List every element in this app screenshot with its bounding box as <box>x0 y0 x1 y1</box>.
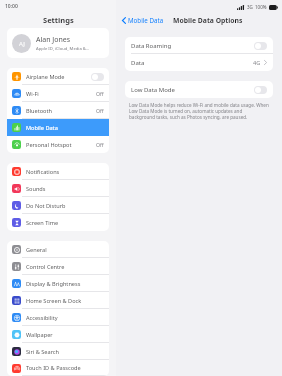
staticText: Data Roaming <box>131 42 172 50</box>
staticText: Accessibility <box>26 314 58 322</box>
button[interactable]: Data <box>125 54 273 71</box>
button[interactable]: Screen Time <box>7 214 109 231</box>
button[interactable]: Wallpaper <box>7 326 109 343</box>
staticText: Wi-Fi <box>26 90 39 98</box>
button[interactable]: General <box>7 241 109 258</box>
button[interactable]: Low Data Mode <box>125 81 273 98</box>
button[interactable]: Airplane Mode <box>7 68 109 85</box>
button[interactable]: Toggle <box>91 73 104 81</box>
staticText: 10:00 <box>5 3 18 10</box>
button[interactable]: AJ <box>7 28 109 58</box>
staticText: Touch ID & Passcode <box>26 364 81 372</box>
staticText: Mobile Data <box>128 16 164 24</box>
button[interactable]: Toggle <box>254 86 267 94</box>
button[interactable]: Mobile Data <box>121 15 165 25</box>
button[interactable]: Data Roaming <box>125 37 273 54</box>
button[interactable]: Bluetooth <box>7 102 109 119</box>
staticText: Alan Jones <box>36 35 71 45</box>
staticText: Wallpaper <box>26 331 53 339</box>
staticText: Mobile Data <box>26 124 58 132</box>
staticText: Apple ID, iCloud, Media &… <box>36 46 90 52</box>
staticText: Screen Time <box>26 219 59 227</box>
staticText: AJ <box>19 40 25 48</box>
button[interactable]: Siri & Search <box>7 343 109 360</box>
button[interactable]: Touch ID & Passcode <box>7 360 109 376</box>
staticText: Mobile Data Options <box>173 16 243 25</box>
staticText: Control Centre <box>26 263 65 271</box>
staticText: General <box>26 246 47 254</box>
button[interactable]: Wi-Fi <box>7 85 109 102</box>
staticText: Data <box>131 59 145 67</box>
staticText: Low Data Mode helps reduce Wi-Fi and mob… <box>129 102 269 120</box>
staticText: Do Not Disturb <box>26 202 66 210</box>
staticText: Off <box>96 107 104 114</box>
staticText: 100% <box>255 4 267 10</box>
button[interactable]: Accessibility <box>7 309 109 326</box>
button[interactable]: Control Centre <box>7 258 109 275</box>
staticText: Siri & Search <box>26 348 59 356</box>
button[interactable]: Mobile Data <box>7 119 109 136</box>
button[interactable]: Do Not Disturb <box>7 197 109 214</box>
staticText: Bluetooth <box>26 107 52 115</box>
staticText: 4G <box>253 59 261 67</box>
staticText: Off <box>96 90 104 97</box>
staticText: Low Data Mode <box>131 86 175 94</box>
button[interactable]: Personal Hotspot <box>7 136 109 153</box>
button[interactable]: Display & Brightness <box>7 275 109 292</box>
staticText: Display & Brightness <box>26 280 81 288</box>
staticText: Off <box>96 141 104 148</box>
staticText: Personal Hotspot <box>26 141 72 149</box>
button[interactable]: Sounds <box>7 180 109 197</box>
staticText: Notifications <box>26 168 60 176</box>
button[interactable]: Toggle <box>254 42 267 50</box>
staticText: Home Screen & Dock <box>26 297 82 305</box>
staticText: Sounds <box>26 185 46 193</box>
staticText: 3G <box>247 4 253 10</box>
staticText: Airplane Mode <box>26 73 65 81</box>
staticText: Settings <box>43 15 74 25</box>
button[interactable]: Notifications <box>7 163 109 180</box>
button[interactable]: Home Screen & Dock <box>7 292 109 309</box>
